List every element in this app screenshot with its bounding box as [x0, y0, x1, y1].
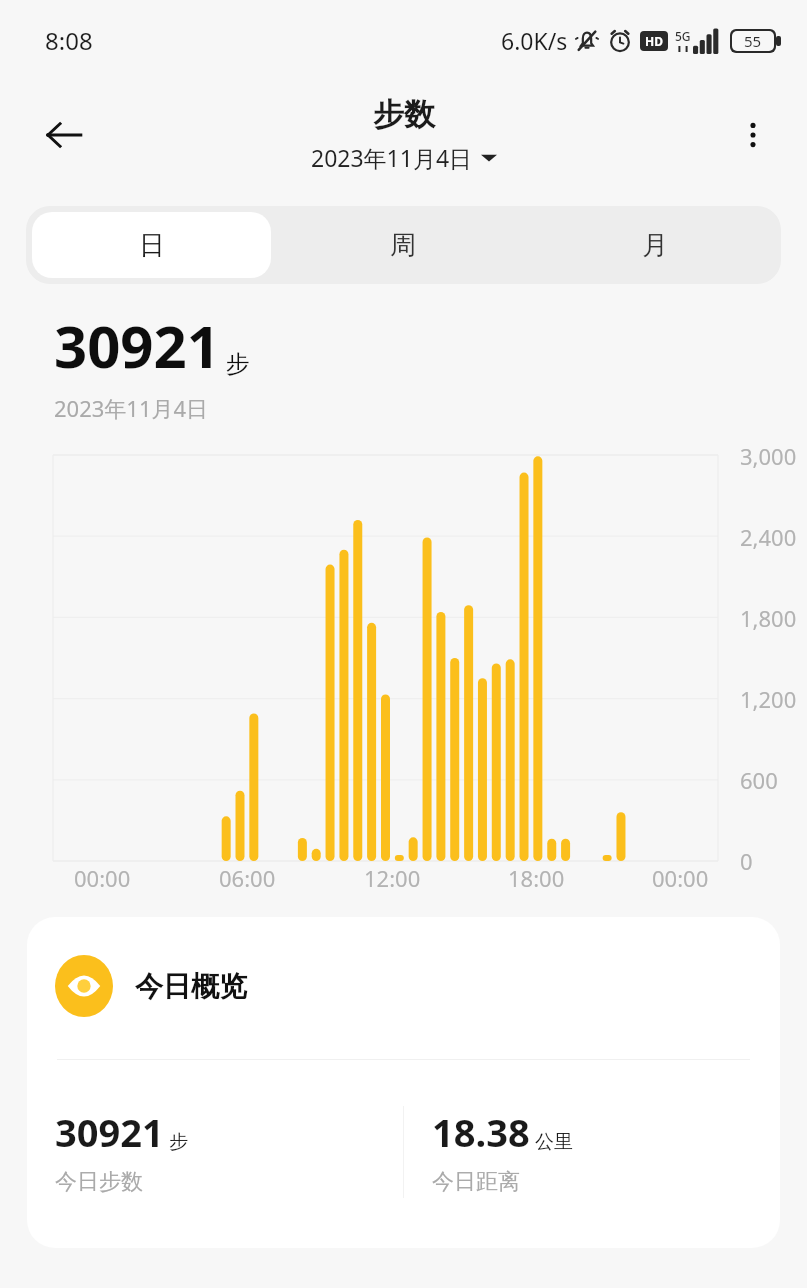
staticText: 18.38 — [432, 1106, 530, 1158]
staticText: 日 — [139, 229, 165, 262]
staticText: 55 — [744, 31, 762, 51]
staticText: 6.0K/s — [501, 25, 568, 56]
staticText: 月 — [642, 229, 668, 262]
staticText: 步 — [226, 349, 250, 379]
staticText: 今日概览 — [135, 969, 247, 1004]
staticText: 2023年11月4日 — [311, 142, 473, 173]
button[interactable]: 日 — [32, 212, 271, 278]
button[interactable]: 周 — [283, 212, 523, 278]
staticText: 2,400 — [740, 522, 797, 552]
staticText: 18:00 — [508, 863, 565, 893]
staticText: 06:00 — [219, 863, 276, 893]
button[interactable]: More options — [721, 103, 785, 167]
button[interactable]: Back — [26, 97, 102, 173]
staticText: 步数 — [373, 95, 435, 134]
staticText: 5G — [675, 28, 691, 44]
staticText: 2023年11月4日 — [54, 393, 209, 423]
staticText: 8:08 — [45, 24, 93, 57]
staticText: 公里 — [535, 1130, 573, 1154]
staticText: 今日距离 — [432, 1168, 520, 1196]
staticText: 00:00 — [74, 863, 131, 893]
staticText: 00:00 — [652, 863, 709, 893]
button[interactable]: 今日概览 — [27, 917, 780, 1248]
button[interactable]: 月 — [535, 212, 775, 278]
staticText: 30921 — [54, 306, 220, 385]
staticText: 1,800 — [740, 603, 797, 633]
staticText: 步 — [169, 1130, 188, 1154]
staticText: 0 — [740, 846, 753, 876]
staticText: 1,200 — [740, 684, 797, 714]
staticText: 周 — [390, 229, 416, 262]
staticText: 30921 — [55, 1106, 164, 1158]
staticText: 3,000 — [740, 441, 797, 471]
staticText: 今日步数 — [55, 1168, 143, 1196]
button[interactable]: 2023年11月4日 — [307, 140, 501, 175]
staticText: HD — [645, 33, 663, 49]
staticText: 12:00 — [364, 863, 421, 893]
staticText: 600 — [740, 765, 778, 795]
